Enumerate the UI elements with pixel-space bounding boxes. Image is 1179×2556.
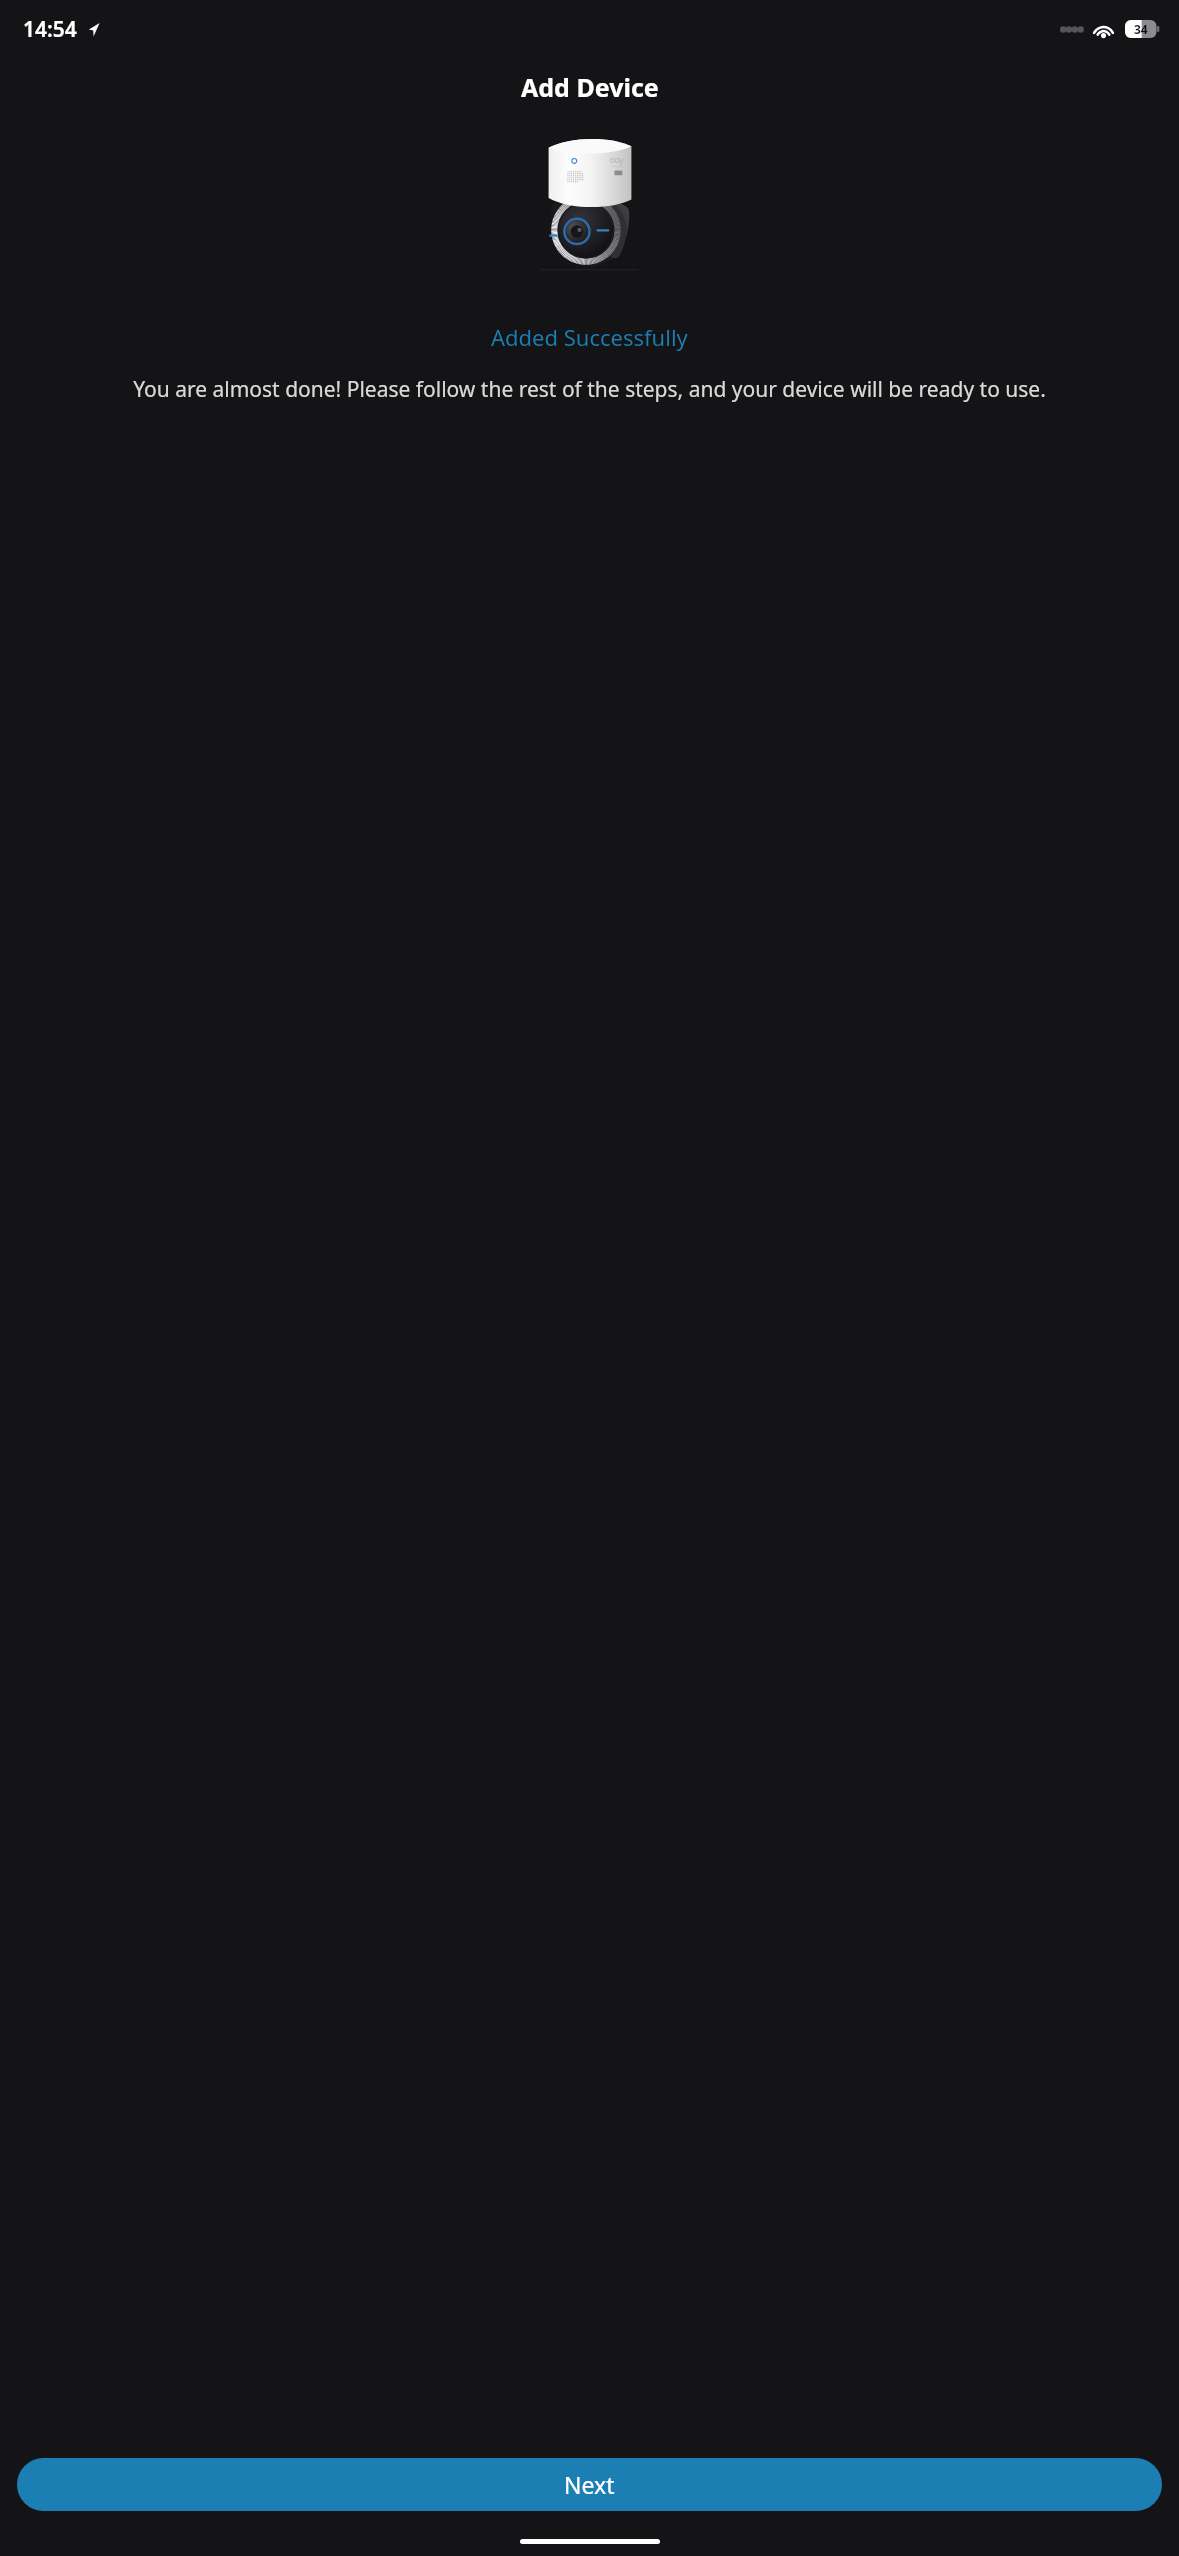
- staticText: 34: [1134, 21, 1148, 37]
- staticText: Next: [564, 2469, 615, 2500]
- staticText: 14:54: [23, 15, 77, 44]
- staticText: Add Device: [521, 70, 659, 104]
- button[interactable]: Next: [17, 2458, 1162, 2511]
- other: Location: [85, 22, 100, 37]
- staticText: Added Successfully: [491, 322, 688, 352]
- staticText: You are almost done! Please follow the r…: [133, 375, 1046, 404]
